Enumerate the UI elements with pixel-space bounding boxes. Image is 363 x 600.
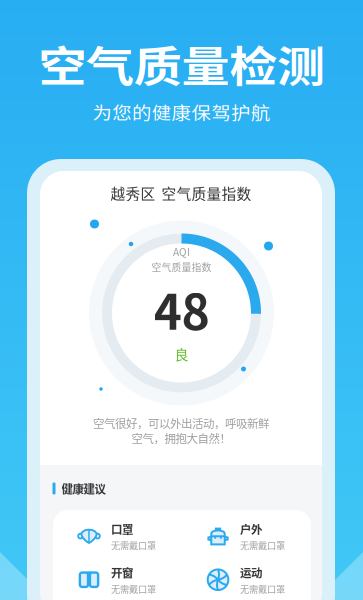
button[interactable]: 开窗 (53, 558, 182, 600)
button[interactable]: 口罩 (53, 514, 182, 558)
staticText: 空气很好，可以外出活动，呼吸新鲜 (93, 415, 269, 431)
staticText: 健康建议 (61, 480, 105, 497)
staticText: 为您的健康保驾护航 (96, 98, 267, 125)
staticText: 空气质量检测 (46, 31, 316, 96)
staticText: 良 (174, 344, 188, 364)
button[interactable]: 户外 (182, 514, 311, 558)
staticText: 口罩 (111, 520, 133, 537)
staticText: 开窗 (111, 564, 133, 581)
staticText: 运动 (240, 564, 262, 581)
staticText: 空气质量指数 (151, 260, 211, 274)
button[interactable]: 运动 (182, 558, 311, 600)
staticText: 户外 (240, 520, 262, 537)
staticText: AQI (173, 244, 190, 259)
staticText: 无需戴口罩 (111, 539, 156, 552)
staticText: 越秀区 空气质量指数 (110, 182, 251, 204)
staticText: 空气，拥抱大自然！ (131, 430, 230, 446)
staticText: 无需戴口罩 (111, 582, 156, 595)
staticText: 无需戴口罩 (240, 539, 285, 552)
staticText: 48 (153, 274, 209, 344)
staticText: 无需戴口罩 (240, 582, 285, 595)
